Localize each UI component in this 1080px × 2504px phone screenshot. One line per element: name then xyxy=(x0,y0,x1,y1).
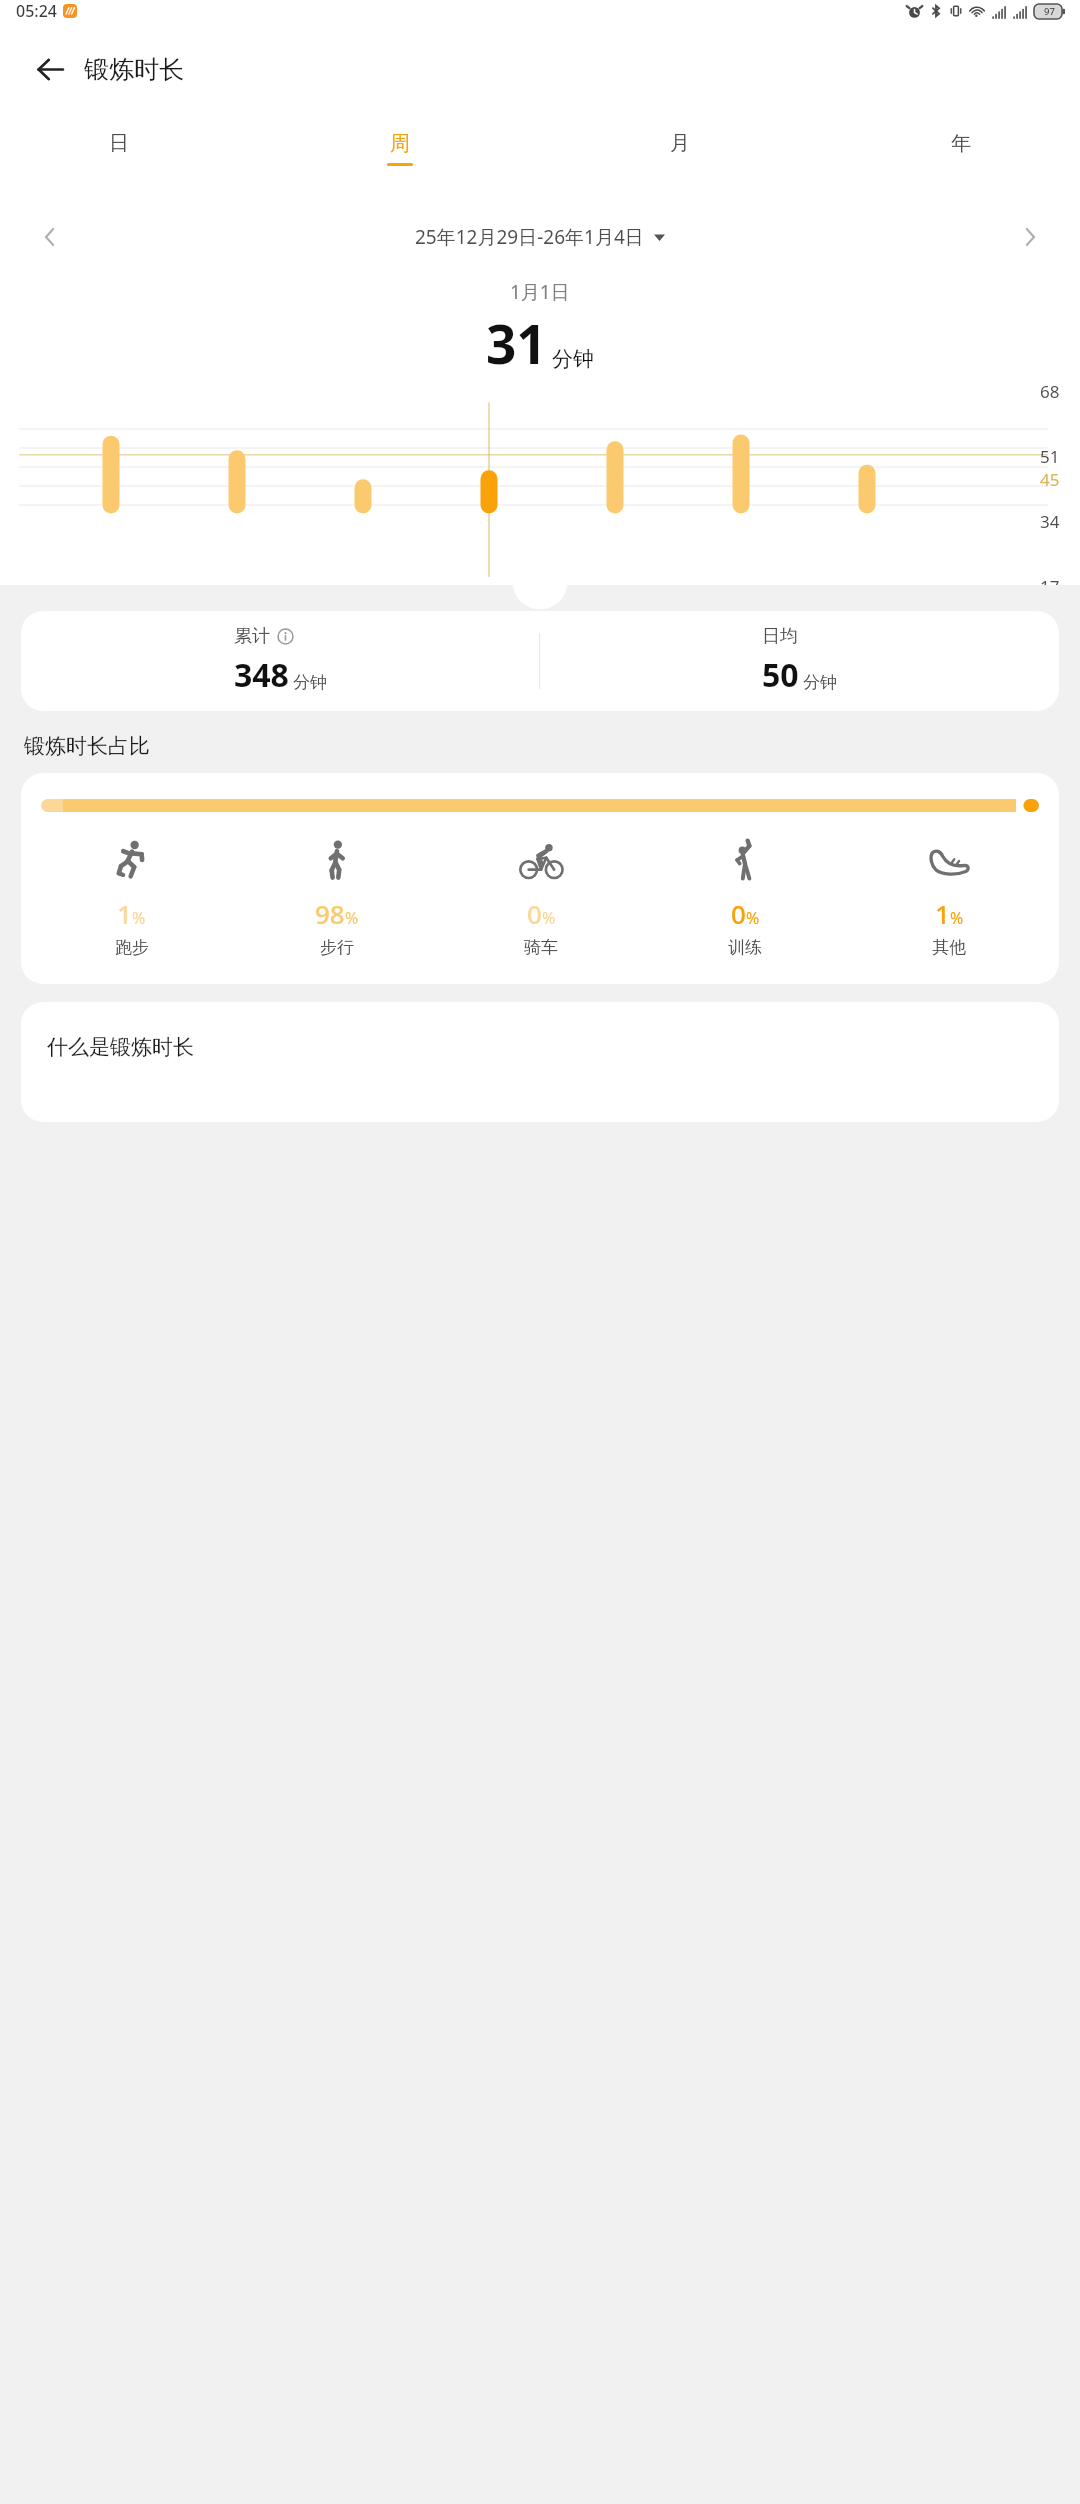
staticText: 17 xyxy=(1040,575,1060,598)
staticText: 骑车 xyxy=(524,937,558,958)
staticText: 50 xyxy=(762,653,799,697)
staticText: 分钟 xyxy=(293,672,327,693)
staticText: % xyxy=(950,907,964,929)
staticText: 0 xyxy=(1050,640,1060,663)
staticText: 锻炼时长占比 xyxy=(24,733,150,759)
staticText: 累计 xyxy=(234,625,270,648)
staticText: 0 xyxy=(527,896,542,931)
button[interactable]: 日 xyxy=(92,131,146,166)
staticText: 348 xyxy=(234,653,289,697)
staticText: 周二 xyxy=(217,646,249,666)
button[interactable]: 98 xyxy=(234,838,439,958)
button[interactable]: 1 xyxy=(29,838,234,958)
button[interactable]: 年 xyxy=(934,131,988,166)
staticText: 什么是锻炼时长 xyxy=(47,1034,194,1060)
staticText: 25年12月29日-26年1月4日 xyxy=(415,224,644,250)
staticText: 日均 xyxy=(762,625,798,648)
staticText: % xyxy=(132,907,146,929)
button[interactable]: Next week xyxy=(1002,209,1058,265)
button[interactable]: 0 xyxy=(439,838,643,958)
staticText: 步行 xyxy=(320,937,354,958)
staticText: % xyxy=(345,907,359,929)
button[interactable]: 0 xyxy=(643,838,847,958)
button[interactable]: Previous week xyxy=(22,209,78,265)
staticText: 45 xyxy=(1040,468,1060,491)
staticText: % xyxy=(746,907,760,929)
staticText: 31 xyxy=(486,307,547,379)
staticText: 月 xyxy=(670,131,690,156)
button[interactable]: 月 xyxy=(653,131,707,166)
staticText: 分钟 xyxy=(803,672,837,693)
staticText: 锻炼时长 xyxy=(84,54,184,85)
staticText: 年 xyxy=(951,131,971,156)
button[interactable]: 周 xyxy=(373,131,427,166)
button[interactable]: 什么是锻炼时长 xyxy=(21,1002,1059,1122)
staticText: 98 xyxy=(315,896,345,931)
staticText: 1 xyxy=(117,896,132,931)
button[interactable]: 累计 xyxy=(21,611,1059,711)
staticText: 分钟 xyxy=(552,346,594,372)
staticText: 68 xyxy=(1040,380,1060,403)
staticText: 跑步 xyxy=(115,937,149,958)
staticText: % xyxy=(542,907,556,929)
staticText: 日 xyxy=(109,131,129,156)
button[interactable]: 1 xyxy=(847,838,1051,958)
staticText: 1 xyxy=(935,896,950,931)
button[interactable]: Back xyxy=(26,45,74,93)
staticText: 05:24 xyxy=(16,0,57,22)
staticText: 51 xyxy=(1040,445,1060,468)
staticText: 97 xyxy=(1044,5,1055,18)
staticText: 0 xyxy=(731,896,746,931)
staticText: 1月1日 xyxy=(510,279,570,305)
staticText: 周 xyxy=(390,131,410,156)
staticText: 34 xyxy=(1040,510,1060,533)
button[interactable]: 25年12月29日-26年1月4日 xyxy=(415,224,665,250)
button[interactable]: 1 xyxy=(21,773,1059,984)
staticText: 训练 xyxy=(728,937,762,958)
staticText: 其他 xyxy=(932,937,966,958)
